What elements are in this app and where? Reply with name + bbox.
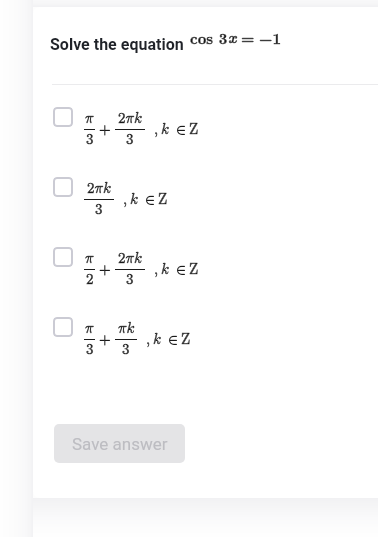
staticText: 2𝜋𝑘 [118, 111, 142, 126]
staticText: , [154, 122, 159, 137]
staticText: , [154, 262, 159, 277]
staticText: 2𝜋𝑘 [87, 181, 111, 196]
staticText: x [228, 26, 237, 48]
staticText: 2𝜋𝑘 [118, 251, 142, 266]
staticText: ∈ [145, 192, 156, 207]
staticText: , [123, 192, 128, 207]
button[interactable]: 𝜋 [53, 107, 378, 153]
staticText: 𝑘 [161, 122, 169, 137]
staticText: 𝑘 [161, 262, 169, 277]
button[interactable]: 𝜋 [53, 247, 378, 293]
staticText: 3 [126, 132, 134, 147]
staticText: 2𝜋𝑘 [118, 251, 142, 266]
staticText: cos 3 [190, 27, 228, 48]
staticText: 𝑘 [161, 262, 169, 277]
staticText: cos 3 [190, 27, 228, 48]
staticText: Z [189, 262, 199, 277]
staticText: Save answer [72, 434, 168, 454]
staticText: Z [158, 192, 168, 207]
staticText: 2𝜋𝑘 [87, 181, 111, 196]
staticText: = [241, 27, 255, 48]
staticText: + [99, 262, 111, 277]
staticText: 3 [126, 272, 134, 287]
staticText: Solve the equation [50, 35, 184, 54]
staticText: 𝑘 [153, 332, 161, 347]
staticText: 𝑘 [161, 122, 169, 137]
staticText: 𝜋𝑘 [118, 321, 135, 336]
staticText: Z [189, 122, 199, 137]
staticText: Z [158, 192, 168, 207]
staticText: 𝑘 [130, 192, 138, 207]
staticText: ∈ [176, 122, 187, 137]
staticText: 3 [122, 342, 130, 357]
staticText: ∈ [176, 122, 187, 137]
staticText: + [99, 332, 111, 347]
staticText: 𝜋 [85, 111, 94, 126]
staticText: 3 [86, 342, 94, 357]
staticText: 3 [95, 202, 103, 217]
staticText: + [99, 332, 111, 347]
staticText: 𝑘 [130, 192, 138, 207]
staticText: ∈ [168, 332, 179, 347]
staticText: 3 [86, 342, 94, 357]
staticText: 𝜋𝑘 [118, 321, 135, 336]
staticText: Z [181, 332, 191, 347]
staticText: 𝜋 [85, 111, 94, 126]
staticText: ∈ [176, 262, 187, 277]
staticText: −1 [259, 27, 282, 48]
button[interactable]: Save answer [54, 424, 185, 463]
staticText: 𝑘 [153, 332, 161, 347]
staticText: , [154, 122, 159, 137]
staticText: ∈ [145, 192, 156, 207]
staticText: , [146, 332, 151, 347]
staticText: ∈ [168, 332, 179, 347]
staticText: 𝜋 [85, 251, 94, 266]
staticText: 3 [126, 272, 134, 287]
staticText: , [154, 262, 159, 277]
staticText: + [99, 122, 111, 137]
staticText: 2 [86, 272, 94, 287]
staticText: 2 [86, 272, 94, 287]
staticText: 3 [86, 132, 94, 147]
staticText: 3 [122, 342, 130, 357]
staticText: 𝜋 [85, 321, 94, 336]
staticText: −1 [259, 27, 282, 48]
staticText: Z [189, 122, 199, 137]
staticText: 2𝜋𝑘 [118, 111, 142, 126]
staticText: 𝜋 [85, 251, 94, 266]
staticText: Z [189, 262, 199, 277]
staticText: + [99, 262, 111, 277]
staticText: 3 [95, 202, 103, 217]
button[interactable]: 𝜋 [53, 317, 378, 363]
staticText: 3 [86, 132, 94, 147]
staticText: ∈ [176, 262, 187, 277]
staticText: Z [181, 332, 191, 347]
staticText: , [146, 332, 151, 347]
staticText: = [241, 27, 255, 48]
staticText: 3 [126, 132, 134, 147]
button[interactable]: 2𝜋𝑘 [53, 177, 378, 223]
staticText: + [99, 122, 111, 137]
staticText: x [228, 26, 237, 48]
staticText: , [123, 192, 128, 207]
staticText: 𝜋 [85, 321, 94, 336]
